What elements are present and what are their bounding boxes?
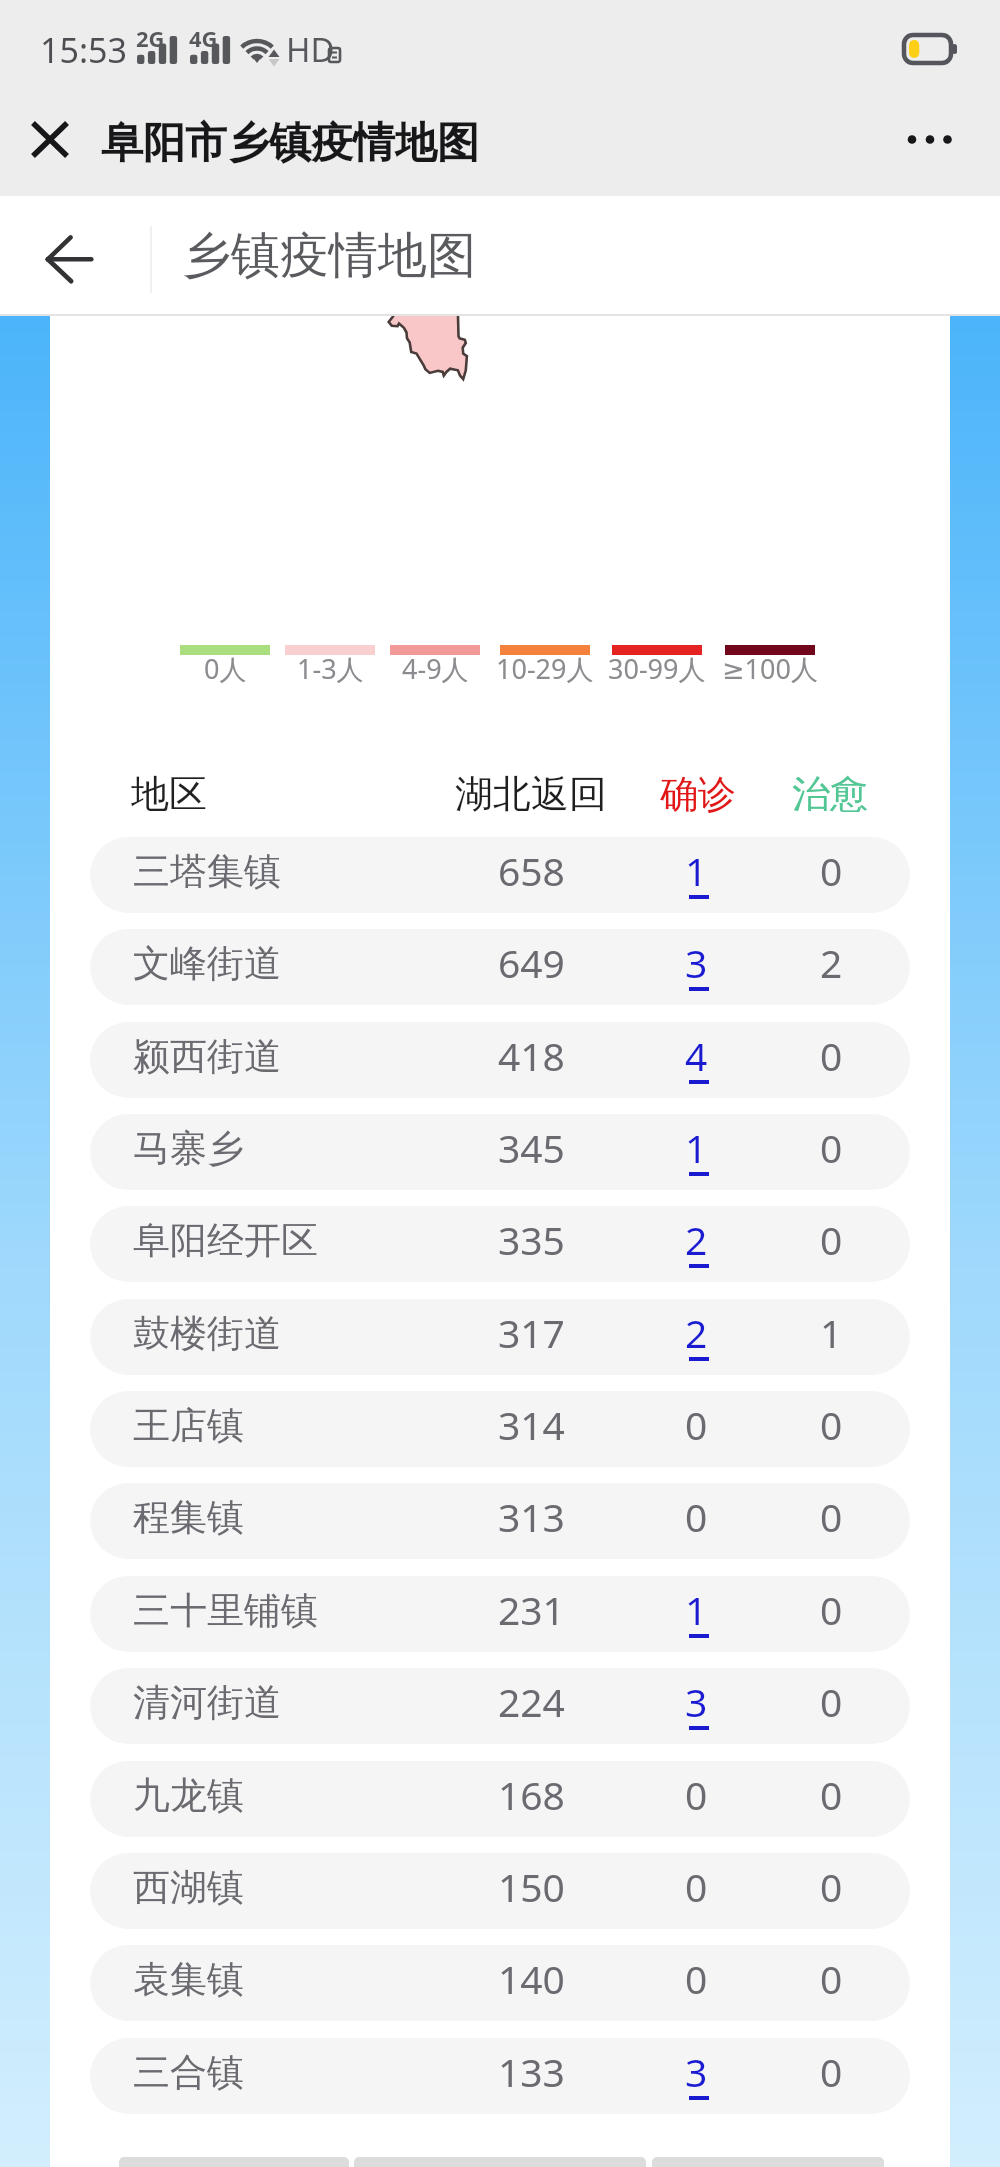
button[interactable]: 关闭: [14, 103, 86, 175]
staticText: 168: [498, 1768, 565, 1821]
staticText: 马寨乡: [133, 1125, 244, 1172]
staticText: 1: [685, 1121, 708, 1174]
staticText: 133: [498, 2045, 565, 2098]
staticText: 0人: [204, 650, 247, 687]
staticText: 150: [498, 1860, 565, 1913]
staticText: 三塔集镇: [133, 848, 281, 895]
staticText: 418: [498, 1029, 565, 1082]
staticText: 314: [498, 1398, 565, 1451]
staticText: 0: [820, 1952, 843, 2005]
staticText: 345: [498, 1121, 565, 1174]
staticText: 335: [498, 1213, 565, 1266]
button[interactable]: 文峰街道: [90, 929, 910, 1005]
staticText: 15:53: [40, 27, 127, 73]
staticText: 阜阳市乡镇疫情地图: [101, 117, 479, 170]
button[interactable]: 王店镇: [90, 1391, 910, 1467]
staticText: 3: [685, 1675, 708, 1728]
staticText: 治愈: [792, 770, 868, 818]
staticText: 0: [820, 1768, 843, 1821]
button[interactable]: 程集镇: [90, 1483, 910, 1559]
staticText: 湖北返回: [455, 770, 607, 818]
staticText: 30-99人: [608, 650, 706, 687]
staticText: 三合镇: [133, 2049, 244, 2096]
staticText: 0: [820, 1213, 843, 1266]
button[interactable]: 袁集镇: [90, 1945, 910, 2021]
staticText: 0: [820, 1029, 843, 1082]
button[interactable]: 颍西街道: [90, 1022, 910, 1098]
staticText: 0: [820, 1860, 843, 1913]
staticText: 程集镇: [133, 1494, 244, 1541]
staticText: 颍西街道: [133, 1033, 281, 1080]
staticText: 2G: [136, 23, 165, 53]
staticText: 0: [820, 1583, 843, 1636]
staticText: 0: [820, 1490, 843, 1543]
staticText: 1: [685, 844, 708, 897]
staticText: 0: [685, 1952, 708, 2005]
staticText: 地区: [131, 770, 207, 818]
button[interactable]: 三十里铺镇: [90, 1576, 910, 1652]
staticText: 0: [820, 1675, 843, 1728]
staticText: 确诊: [660, 770, 736, 818]
staticText: 0: [820, 2045, 843, 2098]
staticText: 4: [685, 1029, 708, 1082]
staticText: 10-29人: [496, 650, 594, 687]
staticText: 649: [498, 936, 565, 989]
staticText: 0: [685, 1860, 708, 1913]
staticText: 王店镇: [133, 1402, 244, 1449]
staticText: 阜阳经开区: [133, 1217, 318, 1264]
staticText: 4-9人: [402, 650, 469, 687]
staticText: 0: [820, 844, 843, 897]
button[interactable]: 三合镇: [90, 2038, 910, 2114]
staticText: 3: [685, 936, 708, 989]
staticText: 4G: [189, 23, 218, 53]
staticText: 九龙镇: [133, 1772, 244, 1819]
staticText: 231: [498, 1583, 565, 1636]
staticText: 袁集镇: [133, 1956, 244, 2003]
staticText: 224: [498, 1675, 565, 1728]
button[interactable]: 更多: [872, 99, 964, 185]
staticText: 三十里铺镇: [133, 1587, 318, 1634]
staticText: 清河街道: [133, 1679, 281, 1726]
staticText: 3: [685, 2045, 708, 2098]
staticText: 1-3人: [297, 650, 364, 687]
button[interactable]: 阜阳经开区: [90, 1206, 910, 1282]
staticText: 0: [685, 1398, 708, 1451]
button[interactable]: 返回: [18, 214, 102, 296]
button[interactable]: 西湖镇: [90, 1853, 910, 1929]
staticText: 乡镇疫情地图: [182, 225, 476, 287]
staticText: 文峰街道: [133, 940, 281, 987]
staticText: 658: [498, 844, 565, 897]
staticText: 313: [498, 1490, 565, 1543]
staticText: 317: [498, 1306, 565, 1359]
button[interactable]: 清河街道: [90, 1668, 910, 1744]
staticText: 1: [820, 1306, 843, 1359]
staticText: 西湖镇: [133, 1864, 244, 1911]
staticText: 1: [685, 1583, 708, 1636]
button[interactable]: 三塔集镇: [90, 837, 910, 913]
button[interactable]: 九龙镇: [90, 1761, 910, 1837]
staticText: 2: [685, 1213, 708, 1266]
staticText: ≥100人: [722, 650, 818, 687]
staticText: 140: [498, 1952, 565, 2005]
staticText: 0: [685, 1768, 708, 1821]
button[interactable]: 鼓楼街道: [90, 1299, 910, 1375]
staticText: 0: [820, 1121, 843, 1174]
staticText: 2: [820, 936, 843, 989]
staticText: HD: [286, 27, 335, 72]
staticText: 2: [685, 1306, 708, 1359]
button[interactable]: 马寨乡: [90, 1114, 910, 1190]
staticText: 鼓楼街道: [133, 1310, 281, 1357]
staticText: 0: [685, 1490, 708, 1543]
staticText: 0: [820, 1398, 843, 1451]
